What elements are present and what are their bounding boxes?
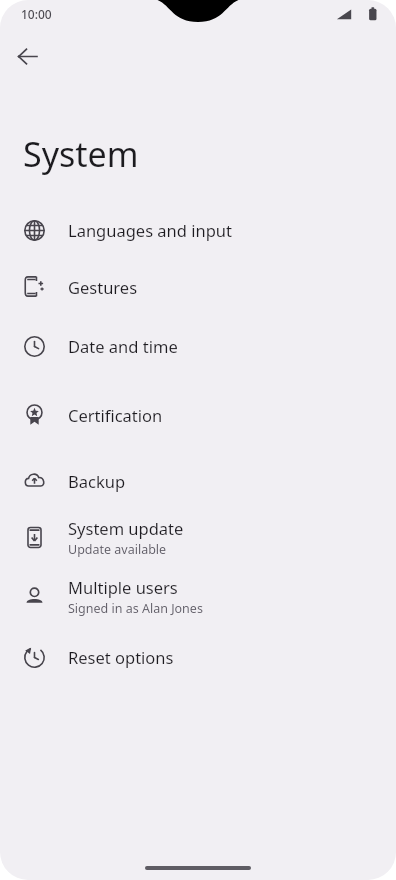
- staticText: Date and time: [68, 335, 178, 357]
- staticText: System update: [68, 517, 184, 539]
- button[interactable]: Certification: [0, 377, 396, 452]
- staticText: Backup: [68, 470, 126, 492]
- staticText: System: [23, 131, 139, 177]
- staticText: Languages and input: [68, 219, 232, 241]
- button[interactable]: Backup: [0, 452, 396, 509]
- staticText: Update available: [68, 541, 167, 558]
- staticText: Gestures: [68, 276, 138, 298]
- staticText: Signed in as Alan Jones: [68, 600, 203, 617]
- staticText: Multiple users: [68, 576, 178, 598]
- button[interactable]: Languages and input: [0, 202, 396, 258]
- staticText: Reset options: [68, 646, 174, 668]
- button[interactable]: Gestures: [0, 258, 396, 315]
- button[interactable]: Reset options: [0, 626, 396, 688]
- button[interactable]: Multiple users: [0, 566, 396, 626]
- button[interactable]: Date and time: [0, 315, 396, 377]
- button[interactable]: Back: [9, 38, 45, 74]
- button[interactable]: System update: [0, 509, 396, 566]
- staticText: Certification: [68, 404, 163, 426]
- staticText: 10:00: [21, 6, 52, 22]
